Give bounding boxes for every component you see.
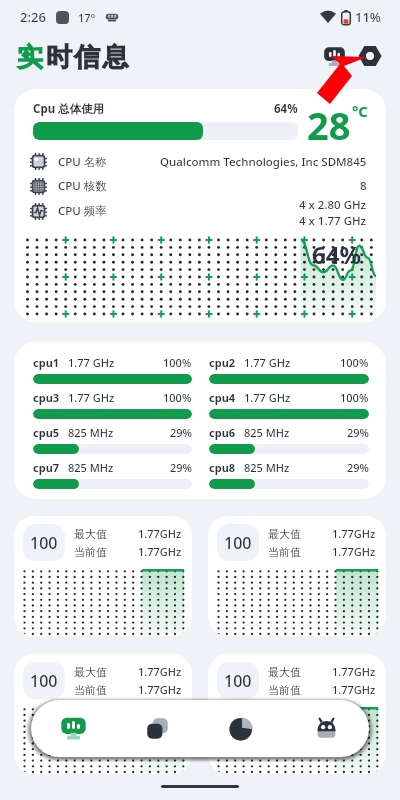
button[interactable]: cpu1 bbox=[14, 342, 386, 499]
staticText: 8 bbox=[360, 178, 367, 194]
button[interactable]: 100 bbox=[14, 654, 192, 774]
staticText: cpu4 bbox=[209, 390, 236, 405]
staticText: 2:26 bbox=[20, 8, 46, 26]
staticText: CPU 频率 bbox=[58, 203, 107, 219]
staticText: cpu2 bbox=[209, 355, 236, 370]
staticText: Cpu 总体使用 bbox=[33, 101, 105, 117]
staticText: 29% bbox=[170, 425, 192, 440]
staticText: 1.77GHz bbox=[332, 544, 376, 559]
staticText: 100% bbox=[340, 355, 369, 370]
staticText: 1.77GHz bbox=[332, 682, 376, 697]
staticText: 当前值 bbox=[268, 545, 301, 559]
staticText: cpu5 bbox=[33, 425, 60, 440]
staticText: 29% bbox=[347, 460, 369, 475]
staticText: 1.77GHz bbox=[332, 526, 376, 541]
staticText: 当前值 bbox=[74, 683, 107, 697]
staticText: 100 bbox=[224, 670, 252, 692]
staticText: 100% bbox=[163, 390, 192, 405]
staticText: 1.77 GHz bbox=[244, 355, 291, 370]
staticText: 100% bbox=[340, 390, 369, 405]
staticText: °C bbox=[352, 101, 368, 121]
staticText: 1.77 GHz bbox=[68, 355, 115, 370]
staticText: 29% bbox=[170, 460, 192, 475]
staticText: 1.77 GHz bbox=[244, 390, 291, 405]
staticText: CPU 名称 bbox=[58, 154, 107, 170]
staticText: 1.77GHz bbox=[138, 682, 182, 697]
button[interactable]: Apps bbox=[115, 700, 199, 757]
button[interactable]: Cpu 总体使用 bbox=[14, 89, 386, 322]
staticText: 1.77GHz bbox=[138, 544, 182, 559]
staticText: 最大值 bbox=[74, 665, 107, 679]
button[interactable]: Monitor bbox=[318, 40, 350, 72]
staticText: cpu3 bbox=[33, 390, 60, 405]
staticText: 29% bbox=[347, 425, 369, 440]
staticText: 4 x 1.77 GHz bbox=[299, 213, 367, 225]
staticText: 100 bbox=[30, 670, 58, 692]
staticText: 最大值 bbox=[74, 527, 107, 541]
button[interactable]: 100 bbox=[14, 516, 192, 636]
button[interactable]: Settings bbox=[354, 40, 386, 72]
staticText: 时信息 bbox=[46, 41, 131, 74]
staticText: cpu7 bbox=[33, 460, 60, 475]
staticText: 64% bbox=[274, 101, 298, 117]
staticText: 825 MHz bbox=[244, 425, 290, 440]
staticText: 当前值 bbox=[74, 545, 107, 559]
staticText: 实 bbox=[17, 41, 46, 74]
staticText: 11% bbox=[355, 8, 381, 26]
staticText: 64% bbox=[312, 238, 362, 271]
staticText: cpu1 bbox=[33, 355, 60, 370]
staticText: 最大值 bbox=[268, 665, 301, 679]
staticText: cpu6 bbox=[209, 425, 236, 440]
staticText: 825 MHz bbox=[68, 425, 114, 440]
button[interactable]: Stats bbox=[199, 700, 284, 757]
staticText: 100 bbox=[224, 532, 252, 554]
staticText: 1.77GHz bbox=[138, 526, 182, 541]
staticText: 100% bbox=[163, 355, 192, 370]
staticText: 当前值 bbox=[268, 683, 301, 697]
staticText: 825 MHz bbox=[244, 460, 290, 475]
staticText: 825 MHz bbox=[68, 460, 114, 475]
button[interactable]: System bbox=[284, 700, 369, 757]
staticText: 1.77GHz bbox=[138, 664, 182, 679]
staticText: cpu8 bbox=[209, 460, 236, 475]
button[interactable]: 100 bbox=[208, 654, 386, 774]
staticText: 28 bbox=[307, 99, 351, 151]
button[interactable]: Realtime bbox=[31, 700, 115, 757]
staticText: Qualcomm Technologies, Inc SDM845 bbox=[160, 154, 367, 170]
staticText: 1.77GHz bbox=[332, 664, 376, 679]
button[interactable]: 100 bbox=[208, 516, 386, 636]
staticText: 100 bbox=[30, 532, 58, 554]
staticText: 4 x 2.80 GHz bbox=[299, 197, 367, 213]
staticText: 最大值 bbox=[268, 527, 301, 541]
staticText: CPU 核数 bbox=[58, 178, 107, 194]
staticText: 1.77 GHz bbox=[68, 390, 115, 405]
staticText: 17° bbox=[78, 10, 96, 25]
